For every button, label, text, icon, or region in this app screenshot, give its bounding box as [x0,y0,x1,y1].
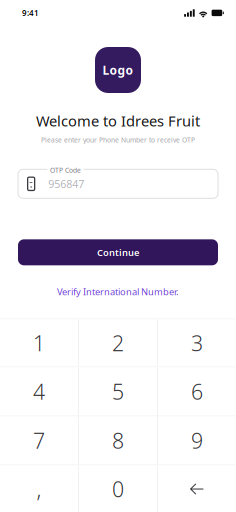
staticText: Continue [97,246,139,258]
button[interactable]: 2 [79,319,157,366]
staticText: OTP Code [50,166,81,175]
button[interactable]: 5 [79,367,157,415]
staticText: 7 [33,426,45,455]
staticText: 2 [112,329,124,357]
button[interactable]: , [0,465,78,512]
button[interactable]: Delete [158,465,236,512]
staticText: Welcome to Idrees Fruit [36,111,200,130]
button[interactable]: 9 [158,416,236,464]
staticText: 9:41 [22,8,39,18]
button[interactable]: 4 [0,367,78,415]
staticText: Please enter your Phone Number to receiv… [41,135,195,144]
button[interactable]: 6 [158,367,236,415]
staticText: 8 [112,426,124,455]
button[interactable]: 0 [79,465,157,512]
staticText: , [36,475,41,503]
staticText: 0 [112,475,124,503]
staticText: 9 [191,426,203,455]
staticText: 3 [191,329,203,357]
button[interactable]: 8 [79,416,157,464]
staticText: Verify International Number. [57,285,179,298]
staticText: 4 [33,377,45,406]
button[interactable]: 1 [0,319,78,366]
staticText: 6 [191,377,203,406]
button[interactable]: 7 [0,416,78,464]
button[interactable]: 3 [158,319,236,366]
staticText: 956847 [48,177,84,191]
button[interactable]: Continue [18,239,218,265]
staticText: Logo [102,62,133,78]
button[interactable]: Verify International Number. [57,281,179,302]
staticText: 1 [33,329,45,357]
staticText: 5 [112,377,124,406]
